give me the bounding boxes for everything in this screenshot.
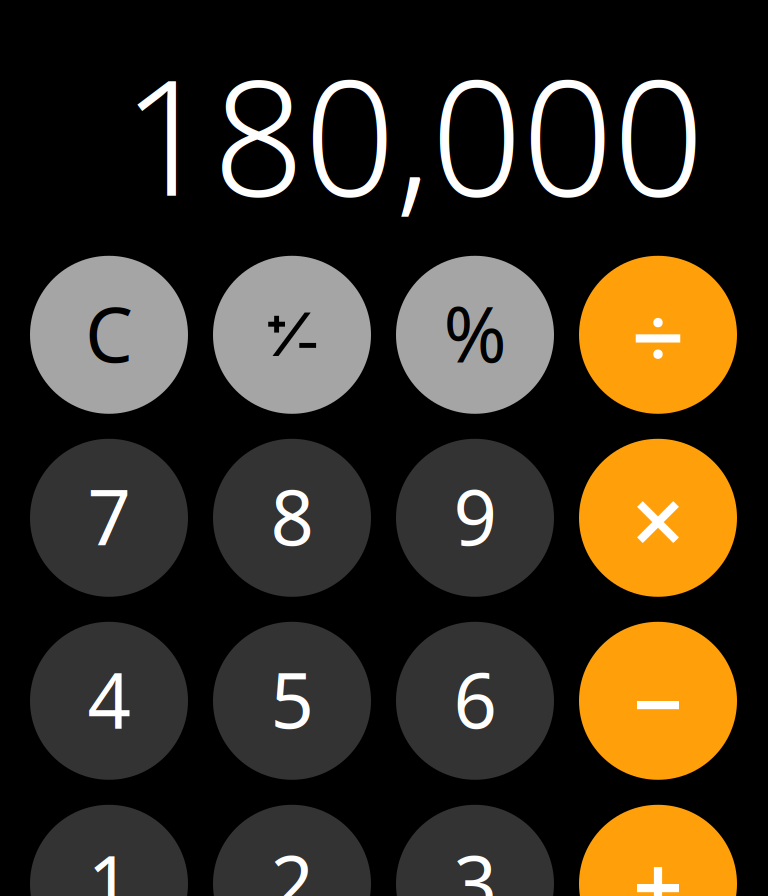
staticText: 6 <box>453 648 496 749</box>
staticText: % <box>443 282 506 383</box>
staticText: 8 <box>270 465 313 566</box>
button[interactable]: 4 <box>30 622 188 780</box>
button[interactable]: 1 <box>30 805 188 896</box>
button[interactable]: 9 <box>396 439 554 597</box>
button[interactable]: Subtract <box>579 622 737 780</box>
staticText: 180,000 <box>122 27 704 240</box>
button[interactable]: 8 <box>213 439 371 597</box>
staticText: 4 <box>87 648 130 749</box>
staticText: 1 <box>87 831 130 896</box>
staticText: 3 <box>453 831 496 896</box>
button[interactable]: 5 <box>213 622 371 780</box>
button[interactable]: 2 <box>213 805 371 896</box>
button[interactable]: Add <box>579 805 737 896</box>
staticText: C <box>85 282 133 383</box>
button[interactable]: Toggle sign <box>213 256 371 414</box>
button[interactable]: Divide <box>579 256 737 414</box>
button[interactable]: 3 <box>396 805 554 896</box>
button[interactable]: C <box>30 256 188 414</box>
button[interactable]: Multiply <box>579 439 737 597</box>
button[interactable]: 7 <box>30 439 188 597</box>
staticText: 5 <box>270 648 313 749</box>
button[interactable]: % <box>396 256 554 414</box>
staticText: 2 <box>270 831 313 896</box>
staticText: 9 <box>453 465 496 566</box>
staticText: 7 <box>87 465 130 566</box>
button[interactable]: 6 <box>396 622 554 780</box>
